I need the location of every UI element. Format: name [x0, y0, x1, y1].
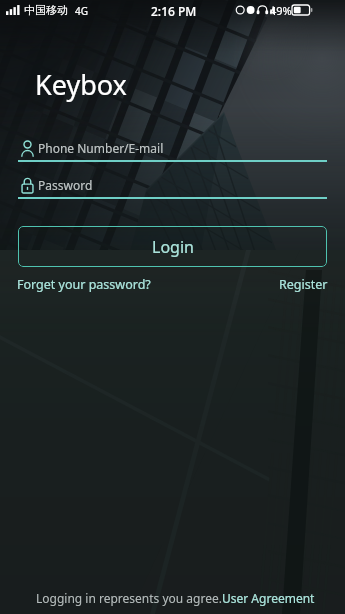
staticText: Forget your password?	[17, 276, 151, 293]
staticText: Phone Number/E-mail	[38, 140, 164, 156]
staticText: Logging in represents you agree.	[36, 590, 222, 606]
staticText: Login	[152, 236, 194, 258]
staticText: User Agreement	[222, 590, 315, 606]
staticText: 4G	[75, 4, 88, 18]
staticText: Keybox	[35, 66, 127, 103]
staticText: 49%	[270, 3, 292, 18]
staticText: 2:16 PM	[151, 3, 197, 19]
button[interactable]: User Agreement	[222, 590, 315, 606]
button[interactable]: Forget your password?	[17, 276, 151, 293]
staticText: 中国移动	[24, 3, 68, 17]
button[interactable]: Login	[18, 226, 327, 267]
staticText: Register	[279, 276, 328, 293]
staticText: Password	[38, 177, 93, 193]
button[interactable]: Register	[279, 276, 328, 293]
